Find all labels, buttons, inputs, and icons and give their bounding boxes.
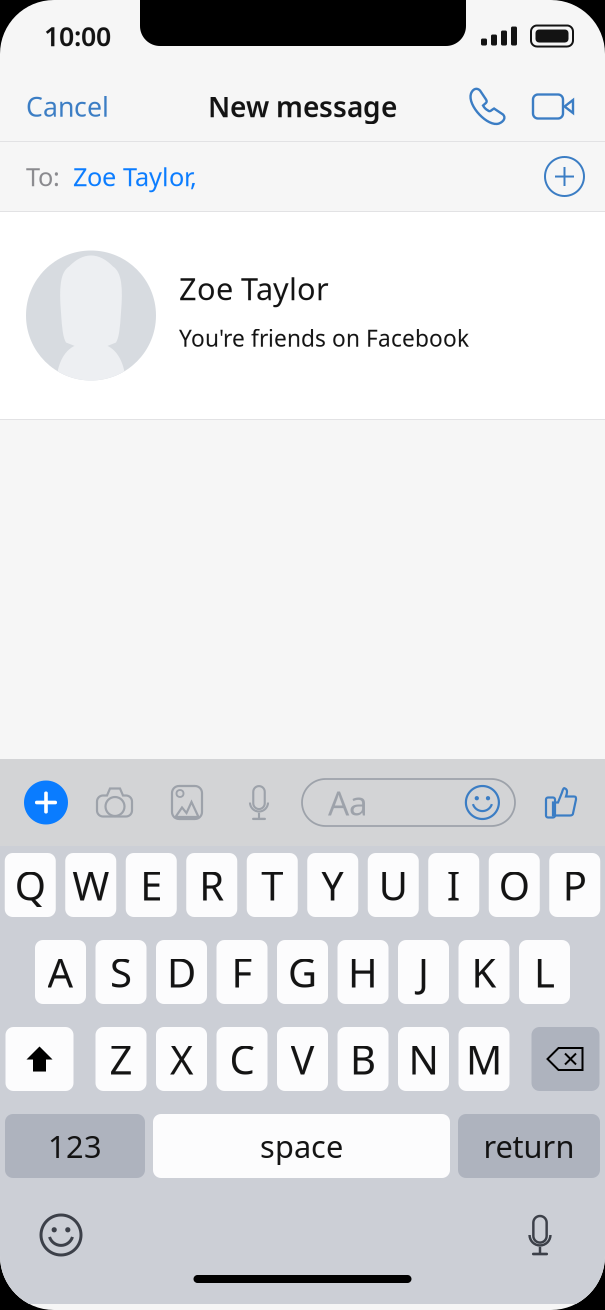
button[interactable]: Send like [541,779,587,825]
staticText: M [466,1032,502,1085]
button[interactable]: F [216,940,267,1004]
button[interactable]: space [153,1114,450,1178]
button[interactable]: C [216,1027,267,1091]
staticText: return [483,1126,574,1166]
staticText: Aa [328,780,368,825]
button[interactable]: N [398,1027,449,1091]
staticText: G [288,945,317,998]
button[interactable]: Q [5,853,56,917]
button[interactable]: Add contact [538,150,591,203]
button[interactable]: X [156,1027,207,1091]
button[interactable]: O [489,853,540,917]
button[interactable]: More options [13,772,79,832]
staticText: B [350,1032,376,1085]
button[interactable]: Video call [517,93,583,119]
staticText: U [379,858,408,911]
button[interactable]: Aa [302,779,515,826]
button[interactable]: S [95,940,146,1004]
staticText: Q [15,858,46,911]
button[interactable]: J [398,940,449,1004]
staticText: F [231,945,252,998]
button[interactable]: K [458,940,509,1004]
staticText: Z [109,1032,132,1085]
button[interactable]: Emoji keyboard [34,1208,88,1262]
staticText: I [447,858,461,911]
staticText: 10:00 [44,18,111,54]
staticText: You're friends on Facebook [179,323,469,353]
staticText: To: [26,160,60,193]
staticText: H [348,945,378,998]
button[interactable]: V [277,1027,328,1091]
button[interactable]: T [247,853,298,917]
button[interactable]: G [277,940,328,1004]
button[interactable]: D [156,940,207,1004]
staticText: A [47,945,73,998]
staticText: V [290,1032,314,1085]
button[interactable]: W [65,853,116,917]
staticText: T [261,858,283,911]
button[interactable]: P [549,853,600,917]
button[interactable]: R [186,853,237,917]
button[interactable]: M [458,1027,509,1091]
staticText: D [167,945,196,998]
staticText: N [408,1032,438,1085]
staticText: Y [321,858,344,911]
staticText: New message [208,88,397,125]
button[interactable]: Photos [151,772,223,832]
staticText: R [199,858,224,911]
button[interactable]: H [337,940,388,1004]
button[interactable]: A [35,940,86,1004]
button[interactable]: Voice message [223,772,295,832]
button[interactable]: I [428,853,479,917]
button[interactable]: U [368,853,419,917]
staticText: 123 [48,1126,102,1166]
staticText: Zoe Taylor, [73,160,197,193]
button[interactable]: Zoe Taylor [0,212,605,420]
button[interactable]: E [126,853,177,917]
button[interactable]: Z [95,1027,146,1091]
button[interactable] [531,1027,599,1091]
staticText: L [534,945,555,998]
staticText: E [140,858,162,911]
staticText: X [170,1032,193,1085]
staticText: space [260,1126,343,1166]
staticText: J [418,945,429,998]
staticText: P [563,858,587,911]
button[interactable]: L [519,940,570,1004]
staticText: O [499,858,530,911]
button[interactable]: Audio call [457,84,517,128]
button[interactable]: return [458,1114,600,1178]
button[interactable]: B [337,1027,388,1091]
staticText: W [72,858,109,911]
staticText: K [471,945,496,998]
button[interactable]: Camera [79,772,151,832]
staticText: C [229,1032,254,1085]
button[interactable]: Dictation [513,1208,567,1262]
button[interactable] [5,1027,73,1091]
staticText: Cancel [26,89,109,124]
button[interactable]: 123 [5,1114,145,1178]
staticText: S [110,945,132,998]
button[interactable]: Cancel [0,77,135,136]
button[interactable]: Y [307,853,358,917]
staticText: Zoe Taylor [179,268,329,309]
